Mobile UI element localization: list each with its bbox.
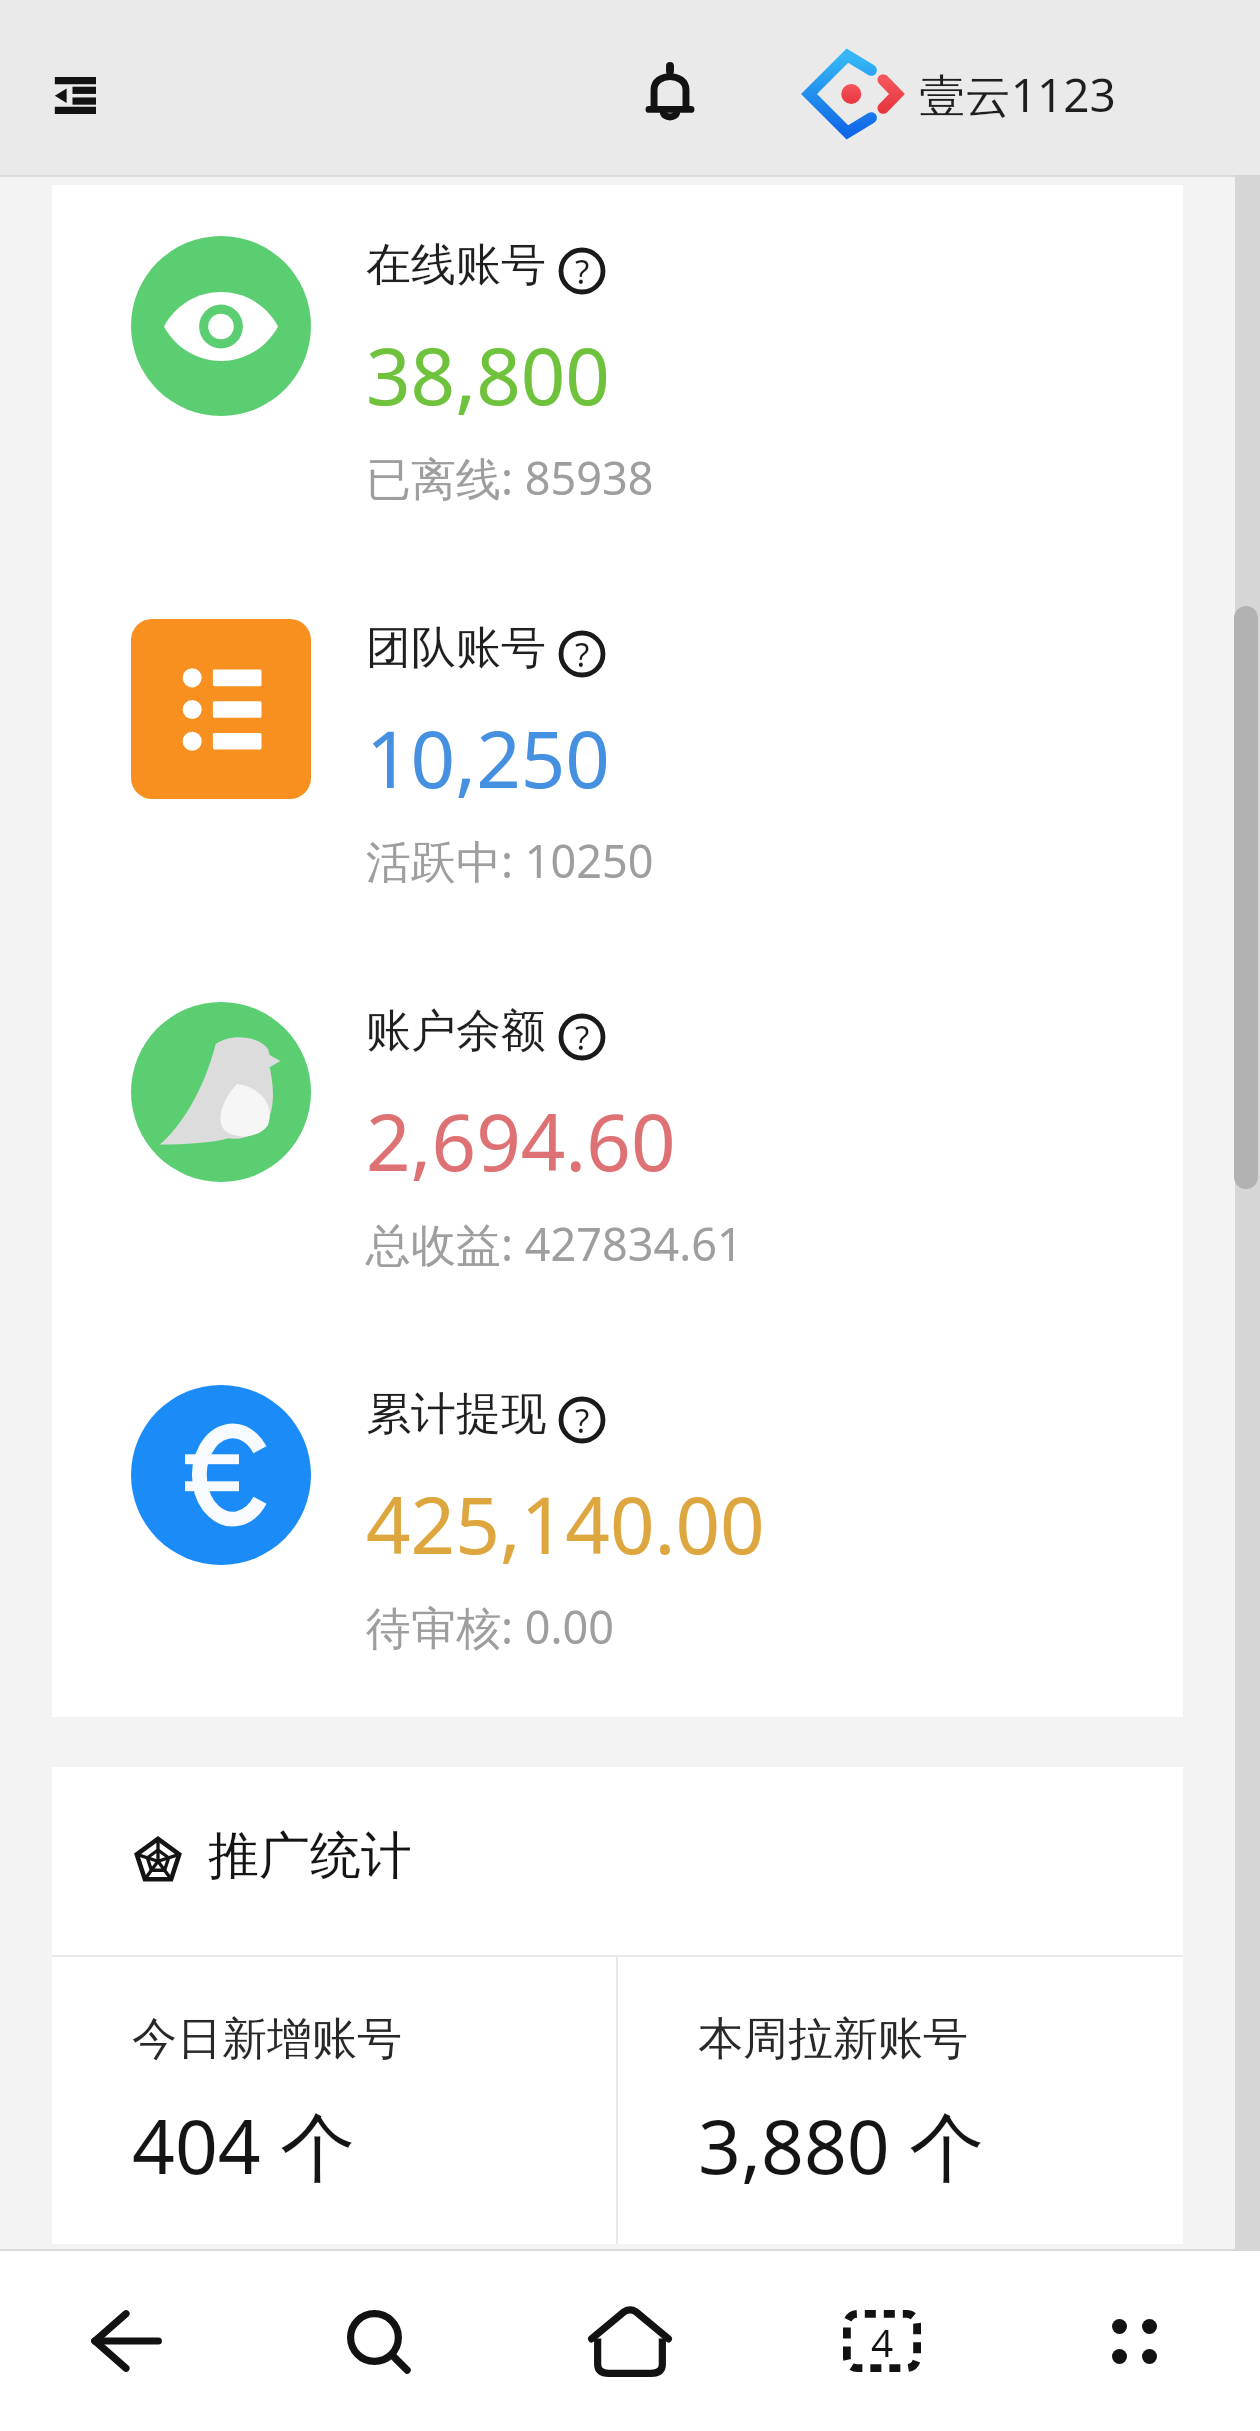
staticText: ? xyxy=(575,249,590,294)
staticText: 账户余额 xyxy=(366,1003,546,1060)
button[interactable]: Notifications xyxy=(604,26,736,158)
button[interactable]: 在线账号 xyxy=(52,185,1183,568)
button[interactable]: More xyxy=(1008,2251,1260,2431)
staticText: 累计提现 xyxy=(366,1386,546,1443)
button[interactable]: Search xyxy=(252,2251,504,2431)
staticText: 425,140.00 xyxy=(366,1471,765,1577)
staticText: 38,800 xyxy=(366,322,610,428)
staticText: 已离线: 85938 xyxy=(366,447,654,508)
staticText: ? xyxy=(575,1015,590,1060)
button[interactable]: 账户余额 xyxy=(52,951,1183,1334)
button[interactable]: Back xyxy=(0,2251,252,2431)
staticText: 404 个 xyxy=(132,2094,356,2196)
button[interactable]: Menu xyxy=(3,23,147,167)
staticText: 推广统计 xyxy=(208,1824,412,1888)
staticText: ? xyxy=(575,1398,590,1443)
button[interactable]: 今日新增账号 xyxy=(52,1957,616,2244)
button[interactable]: 团队账号 xyxy=(52,568,1183,951)
staticText: 总收益: 427834.61 xyxy=(366,1213,743,1274)
staticText: 本周拉新账号 xyxy=(698,2011,968,2068)
staticText: 4 xyxy=(871,2315,894,2368)
staticText: 3,880 个 xyxy=(698,2094,985,2196)
staticText: 活跃中: 10250 xyxy=(366,830,654,891)
button[interactable]: 本周拉新账号 xyxy=(618,1957,1183,2244)
button[interactable]: 累计提现 xyxy=(52,1334,1183,1717)
staticText: 待审核: 0.00 xyxy=(366,1596,615,1657)
button[interactable]: Home xyxy=(504,2251,756,2431)
staticText: 今日新增账号 xyxy=(132,2011,402,2068)
button[interactable]: 壹云1123 xyxy=(812,31,1116,157)
staticText: 2,694.60 xyxy=(366,1088,676,1194)
staticText: ? xyxy=(575,632,590,677)
button[interactable]: Tabs xyxy=(756,2251,1008,2431)
staticText: 团队账号 xyxy=(366,620,546,677)
staticText: 在线账号 xyxy=(366,237,546,294)
staticText: 壹云1123 xyxy=(919,63,1116,126)
staticText: 10,250 xyxy=(366,705,610,811)
